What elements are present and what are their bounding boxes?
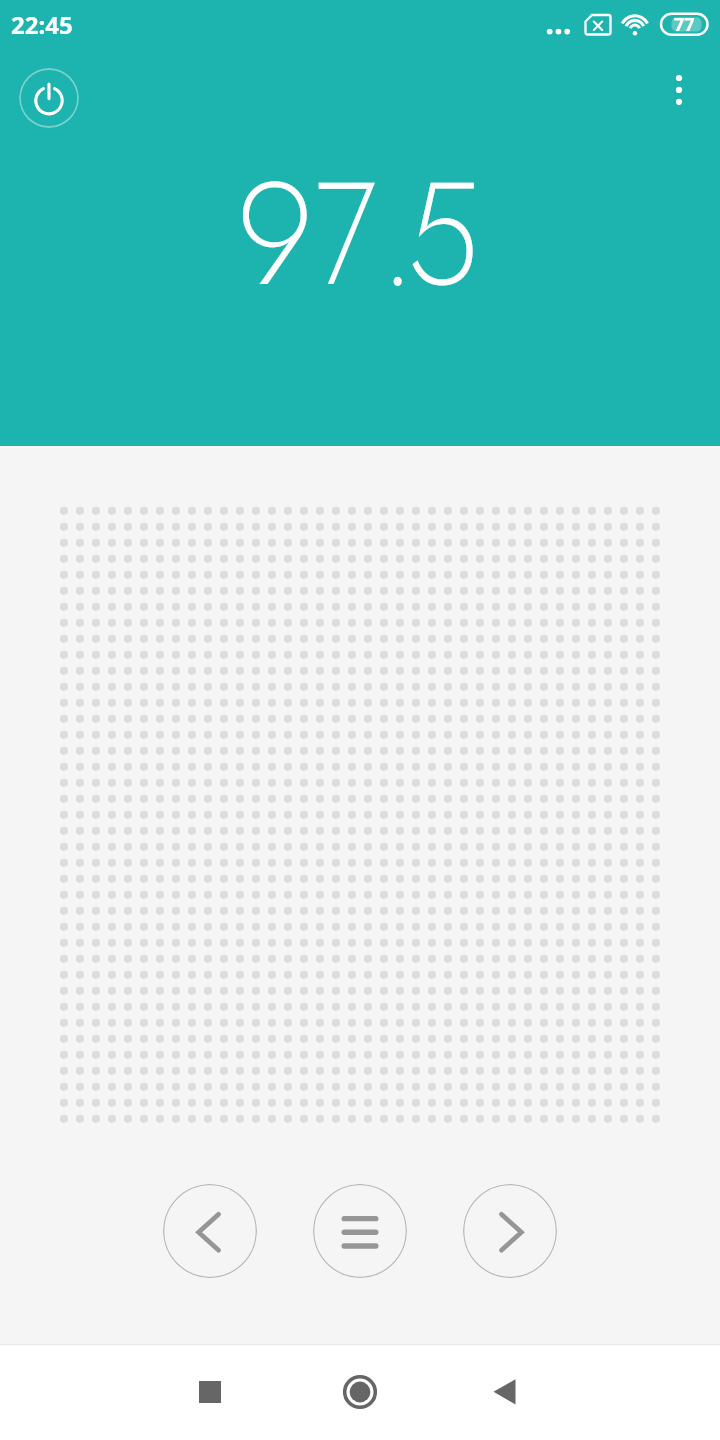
staticText: 22:45 xyxy=(11,8,73,41)
staticText: 77 xyxy=(674,12,695,37)
button[interactable]: Previous station xyxy=(163,1184,257,1278)
button[interactable]: Recent apps xyxy=(150,1344,270,1440)
button[interactable]: More options xyxy=(655,66,703,114)
button[interactable]: Power xyxy=(19,68,79,128)
button[interactable]: Home xyxy=(300,1344,420,1440)
button[interactable]: Next station xyxy=(463,1184,557,1278)
button[interactable]: Back xyxy=(446,1344,566,1440)
button[interactable]: Station list xyxy=(313,1184,407,1278)
